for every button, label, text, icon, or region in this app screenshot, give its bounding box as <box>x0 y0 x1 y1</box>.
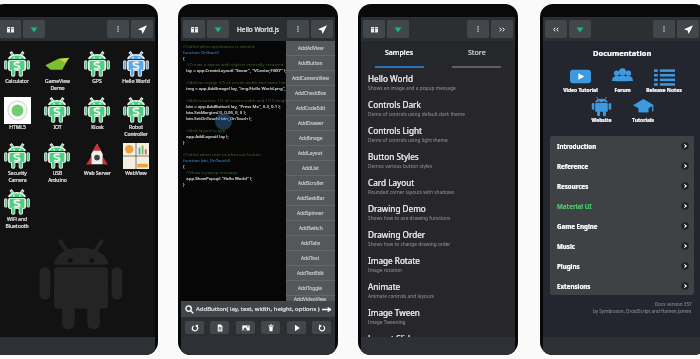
button[interactable]: AddSpinner <box>286 206 335 220</box>
button[interactable]: AddSwitch <box>286 221 335 235</box>
button[interactable]: AddSeekBar <box>286 191 335 205</box>
button[interactable]: Hello World <box>368 73 515 99</box>
staticText: Music <box>557 242 576 250</box>
button[interactable]: Video Tutorial <box>559 66 601 94</box>
button[interactable]: Game Engine <box>550 216 694 235</box>
button[interactable]: Store <box>438 41 515 68</box>
button[interactable]: Introduction <box>550 136 694 155</box>
button[interactable]: AddScroller <box>286 176 335 190</box>
staticText: Web Server <box>84 170 111 177</box>
button[interactable]: Animate <box>368 281 515 307</box>
button[interactable]: GPS <box>77 49 117 95</box>
button[interactable]: Material UI <box>550 196 694 215</box>
button[interactable]: Wifi <box>387 20 409 38</box>
button[interactable]: Run <box>287 321 306 334</box>
staticText: Security Camera <box>8 170 27 183</box>
button[interactable]: AddText <box>286 251 335 265</box>
button[interactable]: Wifi <box>23 20 45 38</box>
button[interactable]: Extensions <box>550 276 694 295</box>
button[interactable]: Wifi <box>569 20 591 38</box>
button[interactable]: AddButton <box>286 56 335 70</box>
button[interactable]: AddAdView <box>286 41 335 55</box>
button[interactable]: Reload <box>312 321 331 334</box>
button[interactable]: Send <box>131 20 153 38</box>
button[interactable]: Samples <box>361 41 438 68</box>
button[interactable]: AddImage <box>286 131 335 145</box>
staticText: } <box>183 139 185 145</box>
button[interactable]: Controls Dark <box>368 99 515 125</box>
button[interactable]: Music <box>550 236 694 255</box>
button[interactable]: Resources <box>550 176 694 195</box>
button[interactable]: Menu <box>183 20 205 38</box>
button[interactable]: WebView <box>117 141 155 187</box>
staticText: AddSpinner <box>297 210 324 217</box>
button[interactable]: Wifi <box>207 20 229 38</box>
button[interactable]: Image Tween <box>368 307 515 333</box>
button[interactable]: USB Arduino <box>37 141 77 187</box>
button[interactable]: More options <box>287 20 309 38</box>
button[interactable]: AddTextEdit <box>286 266 335 280</box>
staticText: AddImage <box>299 135 323 142</box>
staticText: AddAdView <box>298 45 324 52</box>
button[interactable]: Forum <box>601 66 643 94</box>
staticText: USB Arduino <box>48 170 67 183</box>
button[interactable]: GameView Demo <box>37 49 77 95</box>
button[interactable]: More options <box>107 20 129 38</box>
staticText: Layout Slide <box>368 333 415 337</box>
button[interactable]: File <box>210 321 229 334</box>
button[interactable]: More options <box>653 20 675 38</box>
button[interactable]: Menu <box>363 20 385 38</box>
button[interactable]: Kiosk <box>77 95 117 141</box>
button[interactable]: Release Notes <box>643 66 685 94</box>
button[interactable]: Layout Slide <box>368 333 515 337</box>
button[interactable]: Image Rotate <box>368 255 515 281</box>
button[interactable]: Button Styles <box>368 151 515 177</box>
button[interactable]: AddCameraView <box>286 71 335 85</box>
button[interactable]: WiFi and Bluetooth <box>0 187 37 233</box>
button[interactable]: Send <box>677 20 699 38</box>
button[interactable]: Tutorials <box>622 96 664 124</box>
button[interactable]: HTML5 <box>0 95 37 141</box>
staticText: Demos various button styles <box>368 163 433 170</box>
staticText: Hello World.js <box>237 25 280 34</box>
button[interactable]: Drawing Order <box>368 229 515 255</box>
button[interactable]: AddCodeEdit <box>286 101 335 115</box>
button[interactable]: AddList <box>286 161 335 175</box>
staticText: Controls Dark <box>368 99 421 110</box>
button[interactable]: Menu <box>0 20 21 38</box>
button[interactable]: Image <box>236 321 255 334</box>
button[interactable]: Back <box>545 20 567 38</box>
button[interactable]: Hello World <box>117 49 155 95</box>
staticText: Image Tween <box>368 307 420 318</box>
button[interactable]: IOT <box>37 95 77 141</box>
staticText: AddSeekBar <box>297 195 325 202</box>
button[interactable]: Plugins <box>550 256 694 275</box>
button[interactable]: Calculator <box>0 49 37 95</box>
button[interactable]: Security Camera <box>0 141 37 187</box>
button[interactable]: Website <box>580 96 622 124</box>
button[interactable]: Next <box>491 20 513 38</box>
staticText: AddSwitch <box>299 225 323 232</box>
button[interactable]: Reference <box>550 156 694 175</box>
button[interactable]: More options <box>467 20 489 38</box>
button[interactable]: Drawing Demo <box>368 203 515 229</box>
staticText: Animate <box>368 281 401 292</box>
button[interactable]: Card Layout <box>368 177 515 203</box>
button[interactable]: Undo <box>185 321 204 334</box>
button[interactable]: Web Server <box>77 141 117 187</box>
button[interactable]: Controls Light <box>368 125 515 151</box>
button[interactable]: AddTabs <box>286 236 335 250</box>
button[interactable]: Robot Controller <box>117 95 155 141</box>
staticText: AddButton <box>298 60 323 67</box>
button[interactable]: AddLayout <box>286 146 335 160</box>
staticText: //Add layout to app. <box>183 127 227 133</box>
button[interactable]: AddToggle <box>286 281 335 295</box>
button[interactable]: AddVideoView <box>286 296 335 301</box>
staticText: AddToggle <box>298 285 323 292</box>
button[interactable]: Delete <box>261 321 280 334</box>
button[interactable]: Run <box>311 20 333 38</box>
button[interactable]: AddCheckBox <box>286 86 335 100</box>
button[interactable]: AddDrawer <box>286 116 335 130</box>
